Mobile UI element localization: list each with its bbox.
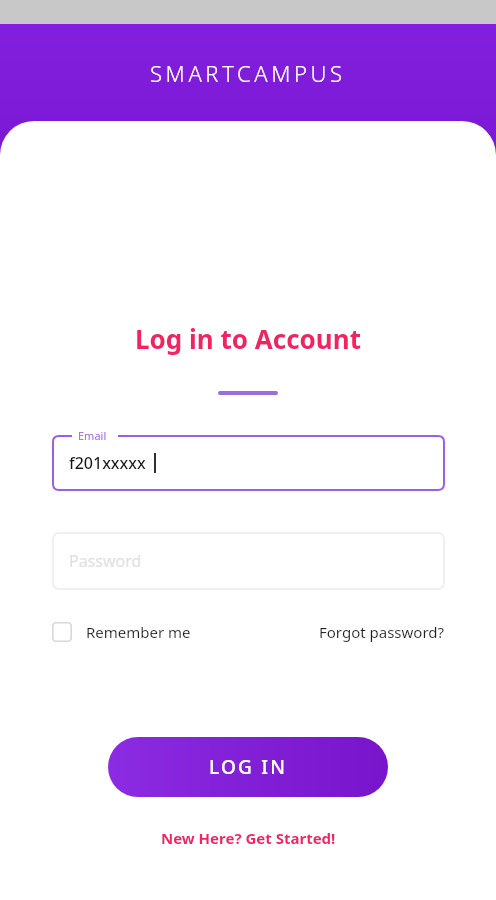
staticText: Log in to Account (135, 321, 361, 356)
staticText: SMARTCAMPUS (150, 58, 346, 88)
staticText: New Here? Get Started! (161, 828, 336, 848)
staticText: Email (78, 428, 107, 443)
staticText: Remember me (86, 622, 191, 642)
button[interactable]: New Here? Get Started! (153, 825, 344, 851)
button[interactable]: Password (52, 532, 445, 590)
staticText: Password (69, 550, 142, 572)
button[interactable]: Remember me (51, 618, 192, 646)
staticText: LOG IN (209, 754, 288, 780)
button[interactable]: LOG IN (108, 737, 388, 797)
staticText: f201xxxxx (69, 452, 146, 474)
button[interactable]: Email (52, 435, 445, 491)
staticText: Forgot password? (319, 622, 445, 642)
button[interactable]: Forgot password? (319, 618, 445, 646)
